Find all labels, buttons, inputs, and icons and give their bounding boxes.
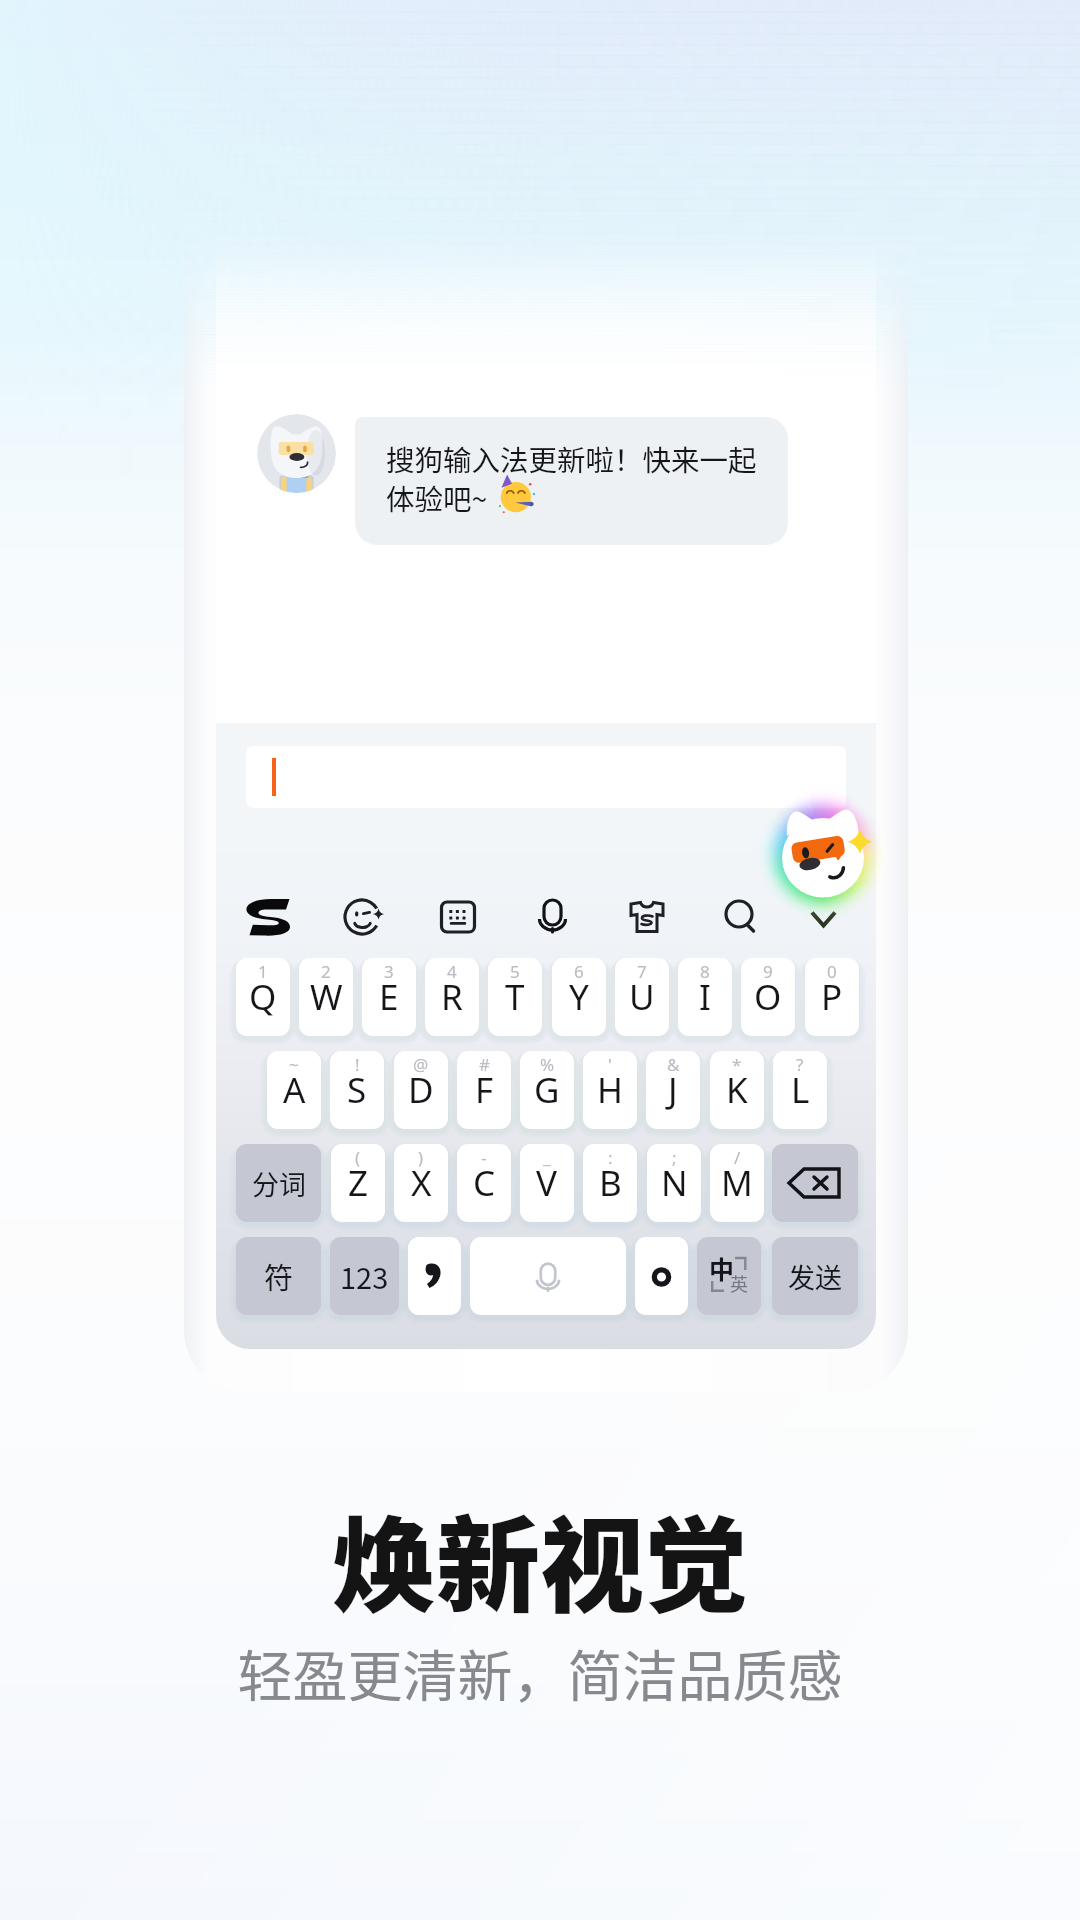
button[interactable]: Search [708,884,774,950]
button[interactable]: T [488,958,542,1036]
button[interactable]: Sogou avatar [257,414,336,493]
button[interactable]: 发送 [772,1237,858,1315]
staticText: 符 [264,1255,294,1297]
button[interactable]: 符 [236,1237,321,1315]
button[interactable]: L [773,1051,827,1129]
staticText: W [310,973,343,1021]
button[interactable]: I [678,958,732,1036]
staticText: A [283,1066,306,1114]
staticText: L [791,1066,810,1114]
staticText: : [608,1146,613,1169]
staticText: V [536,1159,558,1207]
staticText: @ [413,1053,429,1076]
button[interactable]: 123 [330,1237,399,1315]
staticText: Z [348,1159,369,1207]
staticText: # [479,1053,490,1076]
button[interactable]: E [362,958,416,1036]
button[interactable]: V [520,1144,574,1222]
staticText: 2 [321,960,331,983]
staticText: R [441,973,463,1021]
staticText: ~ [289,1053,299,1076]
button[interactable]: J [646,1051,700,1129]
button[interactable]: Emoji [329,884,395,950]
button[interactable]: Q [236,958,290,1036]
staticText: S [347,1066,367,1114]
staticText: Y [569,973,589,1021]
button[interactable]: Text input field [246,746,846,808]
staticText: 发送 [788,1257,842,1296]
staticText: I [699,973,711,1021]
button[interactable]: D [394,1051,448,1129]
button[interactable]: Y [552,958,606,1036]
staticText: 分词 [252,1164,306,1203]
staticText: 9 [763,960,773,983]
staticText: H [597,1066,623,1114]
staticText: 搜狗输入法更新啦！快来一起 [386,438,757,479]
button[interactable]: Backspace [772,1144,858,1222]
button[interactable]: Period [635,1237,688,1315]
button[interactable]: Switch Chinese English [697,1237,761,1315]
staticText: - [481,1146,487,1169]
button[interactable]: U [615,958,669,1036]
button[interactable]: C [457,1144,511,1222]
button[interactable]: Collapse keyboard [791,884,857,950]
staticText: _ [543,1146,551,1169]
button[interactable]: Comma [408,1237,461,1315]
button[interactable]: H [583,1051,637,1129]
staticText: E [379,973,399,1021]
staticText: O [754,973,782,1021]
button[interactable]: N [647,1144,701,1222]
staticText: X [411,1159,432,1207]
button[interactable]: Keyboard layout [425,884,491,950]
button[interactable]: K [710,1051,764,1129]
staticText: ' [608,1053,612,1076]
staticText: & [667,1053,680,1076]
button[interactable]: P [805,958,859,1036]
staticText: B [599,1159,622,1207]
staticText: * [732,1053,742,1076]
staticText: 8 [700,960,710,983]
staticText: F [475,1066,494,1114]
staticText: 6 [574,960,584,983]
button[interactable]: X [394,1144,448,1222]
button[interactable]: S [330,1051,384,1129]
staticText: ( [355,1146,361,1169]
button[interactable]: A [267,1051,321,1129]
staticText: P [821,973,843,1021]
button[interactable]: F [457,1051,511,1129]
staticText: ! [355,1053,360,1076]
button[interactable]: Theme [614,884,680,950]
staticText: ) [418,1146,424,1169]
staticText: 4 [447,960,457,983]
staticText: 轻盈更清新，简洁品质感 [0,1632,1080,1712]
button[interactable]: Sogou AI assistant [743,774,903,934]
button[interactable]: Z [331,1144,385,1222]
button[interactable]: R [425,958,479,1036]
button[interactable]: Voice input [520,884,586,950]
staticText: 0 [827,960,837,983]
staticText: 7 [637,960,647,983]
button[interactable]: Sogou [236,884,302,950]
staticText: 英 [730,1270,748,1296]
staticText: N [661,1159,688,1207]
button[interactable]: O [741,958,795,1036]
button[interactable]: B [583,1144,637,1222]
staticText: 1 [258,960,268,983]
staticText: 焕新视觉 [0,1483,1080,1634]
button[interactable]: Space, voice input [470,1237,626,1315]
staticText: 3 [384,960,394,983]
staticText: T [505,973,525,1021]
button[interactable]: W [299,958,353,1036]
staticText: Q [249,973,277,1021]
button[interactable]: M [710,1144,764,1222]
staticText: ? [796,1053,804,1076]
staticText: U [629,973,655,1021]
staticText: 5 [510,960,520,983]
button[interactable]: 分词 [236,1144,321,1222]
staticText: D [408,1066,434,1114]
staticText: K [726,1066,748,1114]
staticText: 体验吧~ [386,477,488,518]
staticText: C [473,1159,496,1207]
button[interactable]: G [520,1051,574,1129]
staticText: M [721,1159,753,1207]
